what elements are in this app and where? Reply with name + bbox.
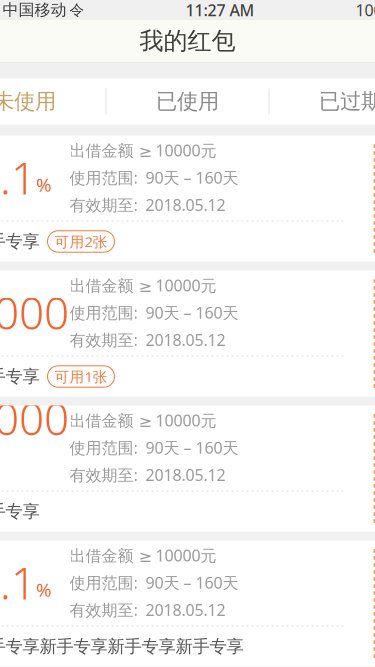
staticText: 11:27 AM [185,0,254,21]
staticText: 有效期至: 2018.05.12 [69,599,225,620]
staticText: 未使用 [0,88,56,115]
button[interactable]: 未使用 [0,79,105,123]
staticText: 可用1张 [54,367,107,386]
staticText: 有效期至: 2018.05.12 [69,194,225,215]
button[interactable]: ¥ [0,270,375,396]
staticText: 60000 [0,389,69,506]
staticText: 可用2张 [54,232,107,251]
staticText: 使用范围: 90天 – 160天 [69,437,238,458]
staticText: 新手专享 [0,501,39,522]
staticText: 令 [69,1,84,19]
button[interactable]: 5.1 [0,135,375,261]
staticText: 有效期至: 2018.05.12 [69,329,225,350]
button[interactable]: 已过期 [269,79,375,123]
staticText: 出借金额 ≥ 10000元 [69,545,216,566]
staticText: 1000 [0,283,69,342]
staticText: 有效期至: 2018.05.12 [69,464,225,485]
staticText: 中国移动 [2,0,66,20]
staticText: 5.1 [0,553,36,612]
staticText: 已使用 [156,88,219,115]
staticText: % [36,172,52,197]
staticText: % [36,577,52,602]
button[interactable]: ¥ [0,405,375,531]
staticText: 使用范围: 90天 – 160天 [69,572,238,593]
staticText: 新手专享 [0,366,39,387]
button[interactable]: 已使用 [106,79,268,123]
staticText: 出借金额 ≥ 10000元 [69,140,216,161]
staticText: 已过期 [319,88,375,115]
staticText: 使用范围: 90天 – 160天 [69,302,238,323]
staticText: 使用范围: 90天 – 160天 [69,167,238,188]
staticText: 新手专享 [0,231,39,252]
staticText: 新手专享新手专享新手专享新手专享 [0,636,243,657]
staticText: 100 % [355,0,375,21]
staticText: 出借金额 ≥ 10000元 [69,275,216,296]
staticText: 出借金额 ≥ 10000元 [69,410,216,431]
staticText: 我的红包 [139,26,235,56]
button[interactable]: 5.1 [0,540,375,666]
staticText: 5.1 [0,148,36,207]
